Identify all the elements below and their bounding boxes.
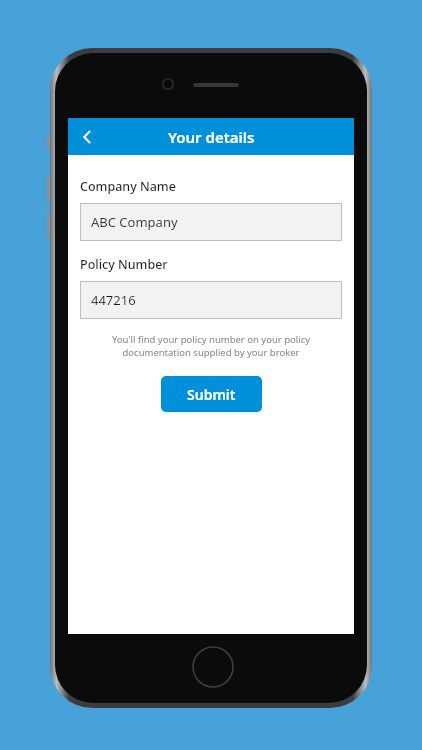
staticText: Policy Number (80, 256, 168, 273)
button[interactable]: ABC Company (80, 203, 342, 241)
button[interactable]: 447216 (80, 281, 342, 319)
button[interactable]: Submit (161, 376, 262, 412)
staticText: Company Name (80, 178, 176, 195)
staticText: You'll find your policy number on your p… (90, 333, 332, 359)
button[interactable]: Back (68, 118, 106, 155)
staticText: Your details (168, 127, 255, 147)
staticText: Submit (187, 385, 236, 404)
staticText: 447216 (91, 291, 136, 309)
staticText: ABC Company (91, 213, 178, 231)
